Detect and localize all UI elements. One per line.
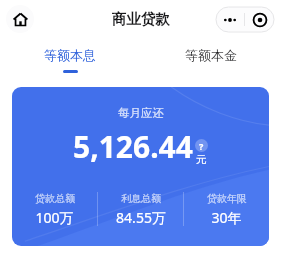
staticText: 每月应还 (118, 106, 164, 120)
staticText: 贷款总额 (35, 192, 75, 205)
staticText: 贷款年限 (207, 192, 247, 205)
staticText: 等额本息 (44, 47, 96, 63)
button[interactable]: 等额本金 (140, 38, 281, 76)
staticText: 5,126.44 (73, 126, 193, 167)
button[interactable]: 等额本息 (0, 38, 140, 76)
staticText: ? (199, 140, 204, 152)
staticText: 利息总额 (121, 192, 161, 205)
staticText: 30年 (211, 208, 242, 227)
button[interactable]: Close mini program (245, 7, 274, 32)
button[interactable]: Home (6, 5, 34, 33)
button[interactable]: More options (216, 7, 244, 32)
button[interactable]: 贷款总额 (12, 192, 97, 227)
staticText: 等额本金 (185, 47, 237, 63)
staticText: 84.55万 (116, 208, 166, 227)
staticText: 元 (196, 153, 207, 166)
button[interactable]: 贷款年限 (184, 192, 269, 227)
staticText: 商业贷款 (112, 10, 170, 28)
button[interactable]: Help about monthly payment (195, 139, 208, 152)
button[interactable]: 每月应还 (12, 87, 269, 246)
button[interactable]: 利息总额 (98, 192, 183, 227)
staticText: 100万 (35, 208, 74, 227)
